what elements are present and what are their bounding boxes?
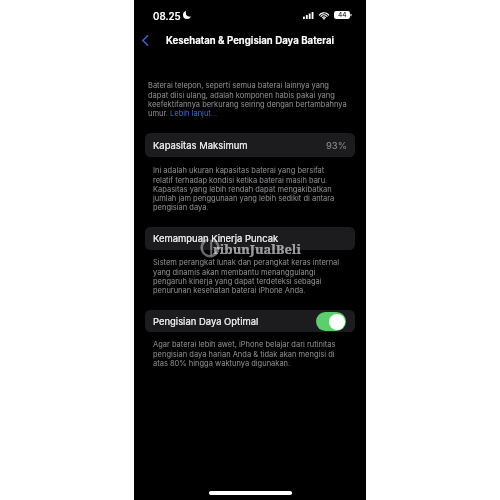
staticText: Ini adalah ukuran kapasitas baterai yang… xyxy=(153,166,343,211)
staticText: Sistem perangkat lunak dan perangkat ker… xyxy=(153,258,343,294)
button[interactable]: Kapasitas Maksimum xyxy=(145,133,355,157)
staticText: Agar baterai lebih awet, iPhone belajar … xyxy=(153,340,343,367)
staticText: Kemampuan Kinerja Puncak xyxy=(153,233,279,244)
staticText: 08.25 xyxy=(153,10,181,22)
staticText: Kesehatan & Pengisian Daya Baterai xyxy=(166,35,335,47)
staticText: Baterai telepon, seperti semua baterai l… xyxy=(148,81,349,117)
button[interactable]: Back xyxy=(134,30,156,51)
button[interactable]: Pengisian Daya Optimal xyxy=(316,312,346,331)
staticText: 44 xyxy=(338,11,347,19)
staticText: ribunJualBeli xyxy=(213,240,301,258)
staticText: 93% xyxy=(326,140,347,151)
staticText: Kapasitas Maksimum xyxy=(153,140,248,151)
button[interactable]: Pengisian Daya Optimal xyxy=(145,310,355,332)
button[interactable]: Kemampuan Kinerja Puncak xyxy=(145,227,355,250)
staticText: Pengisian Daya Optimal xyxy=(153,316,259,327)
